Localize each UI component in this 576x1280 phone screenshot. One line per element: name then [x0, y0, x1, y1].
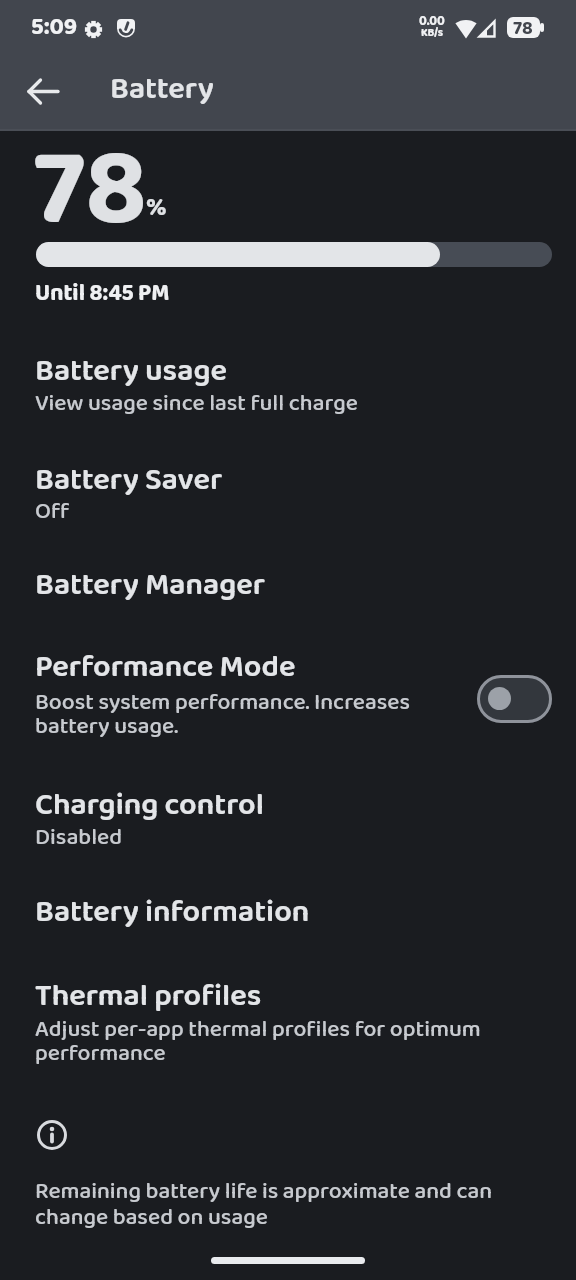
button[interactable] — [20, 68, 68, 116]
staticText: Battery Manager — [35, 561, 266, 611]
button[interactable]: Thermal profiles — [0, 960, 576, 1075]
staticText: Remaining battery life is approximate an… — [35, 1173, 493, 1210]
staticText: Charging control — [35, 781, 264, 831]
staticText: Battery information — [35, 888, 310, 938]
button[interactable]: Battery Manager — [0, 555, 576, 643]
staticText: Adjust per-app thermal profiles for opti… — [35, 1011, 481, 1048]
button[interactable]: Battery Saver — [0, 445, 576, 555]
staticText: % — [146, 187, 167, 229]
staticText: Boost system performance. Increases — [35, 684, 411, 721]
button[interactable]: Performance Mode — [0, 643, 576, 761]
staticText: Performance Mode — [35, 643, 296, 693]
button[interactable]: Battery information — [0, 875, 576, 960]
staticText: 78 — [33, 103, 147, 278]
staticText: battery usage. — [35, 708, 178, 745]
staticText: KB/s — [421, 24, 444, 42]
staticText: change based on usage — [35, 1199, 268, 1236]
staticText: 78 — [513, 14, 533, 44]
staticText: Battery Saver — [35, 456, 223, 506]
staticText: 5:09 — [31, 8, 78, 46]
staticText: 0.00 — [419, 11, 445, 32]
staticText: Thermal profiles — [35, 972, 262, 1022]
staticText: View usage since last full charge — [35, 385, 358, 422]
staticText: performance — [35, 1035, 166, 1072]
button[interactable]: Battery usage — [0, 340, 576, 445]
staticText: Battery usage — [35, 347, 228, 397]
button[interactable] — [477, 675, 552, 723]
staticText: Battery — [110, 65, 214, 115]
staticText: Off — [35, 493, 70, 530]
staticText: Disabled — [35, 819, 123, 856]
staticText: Until 8:45 PM — [35, 275, 170, 312]
button[interactable]: Charging control — [0, 770, 576, 875]
